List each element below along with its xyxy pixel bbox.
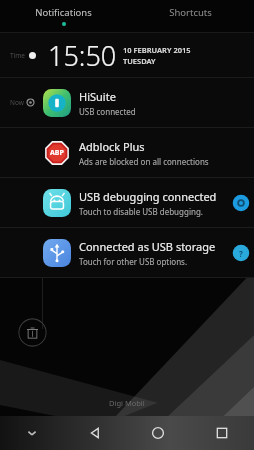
- staticText: Shortcuts: [169, 6, 212, 19]
- button[interactable]: Now: [0, 78, 254, 127]
- button[interactable]: Notifications: [0, 0, 127, 32]
- staticText: Time: [10, 51, 26, 60]
- button[interactable]: [232, 194, 250, 212]
- button[interactable]: ?: [232, 244, 250, 262]
- staticText: USB debugging connected: [79, 189, 217, 204]
- staticText: USB connected: [79, 106, 136, 117]
- staticText: Adblock Plus: [79, 139, 145, 154]
- button[interactable]: Back: [63, 416, 126, 450]
- staticText: Notifications: [35, 6, 92, 19]
- staticText: Digi Mobil: [109, 398, 145, 408]
- staticText: ABP: [50, 148, 64, 158]
- button[interactable]: Recents: [190, 416, 254, 450]
- button[interactable]: USB debugging connected: [0, 178, 254, 227]
- staticText: Touch for other USB options.: [79, 256, 188, 267]
- staticText: Connected as USB storage: [79, 239, 216, 254]
- staticText: Ads are blocked on all connections: [79, 156, 209, 167]
- staticText: ?: [239, 248, 243, 259]
- button[interactable]: ABP: [0, 128, 254, 177]
- staticText: 10 FEBRUARY 2015: [123, 45, 191, 55]
- staticText: Touch to disable USB debugging.: [79, 206, 203, 217]
- staticText: HiSuite: [79, 89, 116, 104]
- staticText: TUESDAY: [123, 56, 156, 66]
- button[interactable]: Clear all notifications: [18, 318, 47, 347]
- button[interactable]: Connected as USB storage: [0, 228, 254, 277]
- button[interactable]: Hide: [0, 416, 63, 450]
- staticText: Now: [10, 98, 24, 107]
- button[interactable]: Shortcuts: [127, 0, 254, 32]
- button[interactable]: Home: [126, 416, 190, 450]
- staticText: 15:50: [48, 37, 117, 74]
